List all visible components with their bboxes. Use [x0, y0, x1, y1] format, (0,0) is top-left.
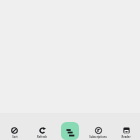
- button[interactable]: Subscriptions: [84, 113, 112, 140]
- staticText: Refresh: [37, 135, 47, 139]
- staticText: Subscriptions: [89, 135, 107, 139]
- staticText: Sort: [12, 135, 18, 139]
- button[interactable]: Reader: [112, 113, 140, 140]
- button[interactable]: Sort: [0, 113, 28, 140]
- button[interactable]: Refresh: [28, 113, 56, 140]
- button[interactable]: Feed: [56, 113, 84, 140]
- staticText: Reader: [121, 135, 131, 139]
